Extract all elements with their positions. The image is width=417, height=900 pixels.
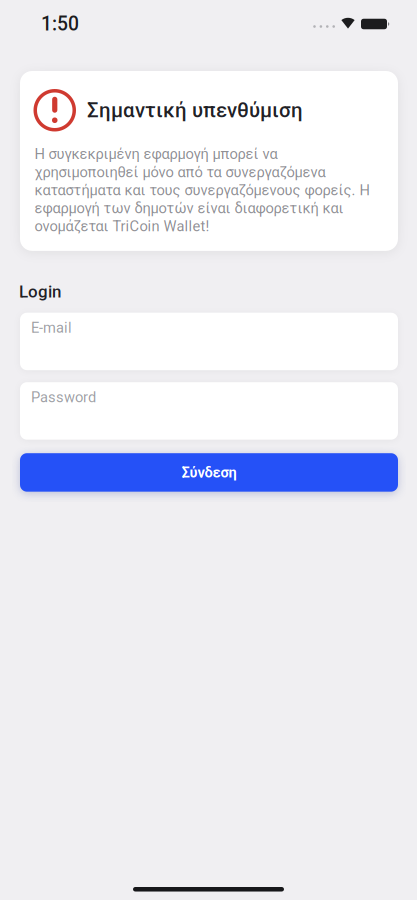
button[interactable]: Σύνδεση [20, 453, 398, 492]
staticText: Login [19, 282, 61, 302]
staticText: E-mail [31, 319, 72, 336]
button[interactable]: E-mail [20, 313, 398, 370]
staticText: Password [31, 389, 96, 406]
staticText: Σύνδεση [181, 464, 236, 481]
button[interactable]: Password [20, 382, 398, 440]
staticText: Η συγκεκριμένη εφαρμογή μπορεί να χρησιμ… [34, 145, 369, 235]
staticText: Σημαντική υπενθύμιση [87, 98, 303, 122]
staticText: 1:50 [41, 13, 79, 35]
